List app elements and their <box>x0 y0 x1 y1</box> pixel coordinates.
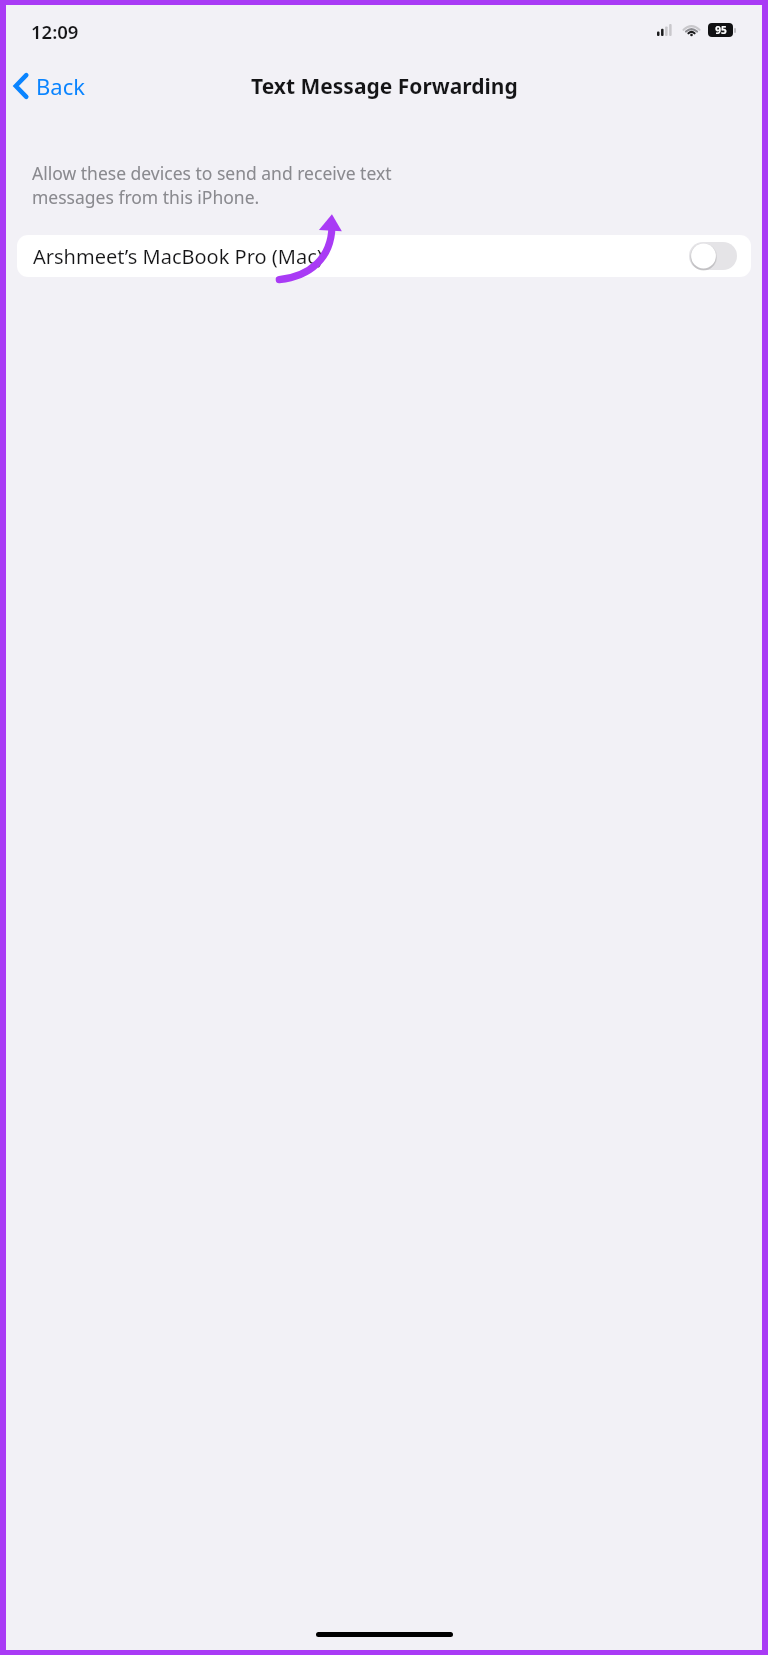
staticText: Allow these devices to send and receive … <box>32 161 392 209</box>
other: Back <box>14 73 29 99</box>
staticText: Text Message Forwarding <box>251 72 518 101</box>
staticText: 95 <box>715 23 727 37</box>
button[interactable]: Toggle text message forwarding <box>689 242 737 270</box>
staticText: 12:09 <box>31 19 79 44</box>
staticText: Arshmeet’s MacBook Pro (Mac) <box>33 243 323 270</box>
button[interactable]: Back <box>6 65 95 107</box>
button[interactable]: Arshmeet’s MacBook Pro (Mac) <box>17 235 751 277</box>
staticText: Back <box>36 71 85 101</box>
